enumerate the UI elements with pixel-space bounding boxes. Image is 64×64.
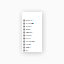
- button[interactable]: Accessibility: [22, 22, 42, 25]
- button[interactable]: Face ID: [22, 43, 42, 46]
- staticText: Sounds: [26, 35, 32, 36]
- button[interactable]: Sounds: [22, 34, 42, 37]
- button[interactable]: Display: [22, 28, 42, 31]
- staticText: Display: [26, 29, 31, 30]
- staticText: Privacy: [26, 26, 32, 27]
- staticText: Accessibility: [26, 23, 34, 24]
- button[interactable]: General: [22, 19, 42, 22]
- button[interactable]: Focus: [22, 37, 42, 40]
- staticText: Screen Time: [26, 41, 35, 42]
- button[interactable]: Privacy: [22, 25, 42, 28]
- staticText: Wallpaper: [26, 32, 33, 33]
- button[interactable]: Screen Time: [22, 40, 42, 43]
- button[interactable]: Wallpaper: [22, 31, 42, 34]
- staticText: Battery: [26, 47, 31, 48]
- staticText: General: [26, 20, 32, 21]
- button[interactable]: Battery: [22, 46, 42, 49]
- button[interactable]: Siri: [22, 49, 42, 52]
- staticText: Face ID: [26, 44, 31, 45]
- staticText: Siri: [26, 50, 28, 51]
- staticText: Focus: [26, 38, 31, 39]
